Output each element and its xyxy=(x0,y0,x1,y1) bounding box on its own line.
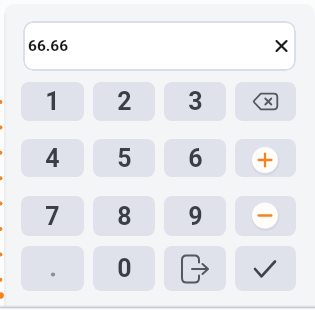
staticText: 1 xyxy=(45,87,60,116)
button[interactable]: 6 xyxy=(164,139,226,177)
button[interactable] xyxy=(235,82,296,121)
button[interactable] xyxy=(164,246,226,291)
staticText: 2 xyxy=(117,87,132,116)
staticText: 0 xyxy=(117,254,132,283)
button[interactable]: 1 xyxy=(21,82,84,121)
staticText: 7 xyxy=(45,202,60,231)
staticText: 4 xyxy=(45,144,60,173)
staticText: 6 xyxy=(188,144,203,173)
button[interactable] xyxy=(235,246,296,291)
button[interactable]: 4 xyxy=(21,139,84,177)
button[interactable]: 7 xyxy=(21,196,84,236)
staticText: 3 xyxy=(188,87,203,116)
button[interactable]: 5 xyxy=(93,139,155,177)
button[interactable]: 9 xyxy=(164,196,226,236)
button[interactable]: 2 xyxy=(93,82,155,121)
staticText: 5 xyxy=(117,144,132,173)
button[interactable]: 3 xyxy=(164,82,226,121)
button[interactable] xyxy=(235,139,296,177)
staticText: 8 xyxy=(117,202,132,231)
button[interactable]: 8 xyxy=(93,196,155,236)
button[interactable]: 0 xyxy=(93,246,155,291)
staticText: 66.66 xyxy=(28,37,69,55)
button[interactable]: 66.66 xyxy=(23,21,296,71)
staticText: 9 xyxy=(188,202,203,231)
button[interactable] xyxy=(21,246,84,291)
button[interactable] xyxy=(235,196,296,236)
